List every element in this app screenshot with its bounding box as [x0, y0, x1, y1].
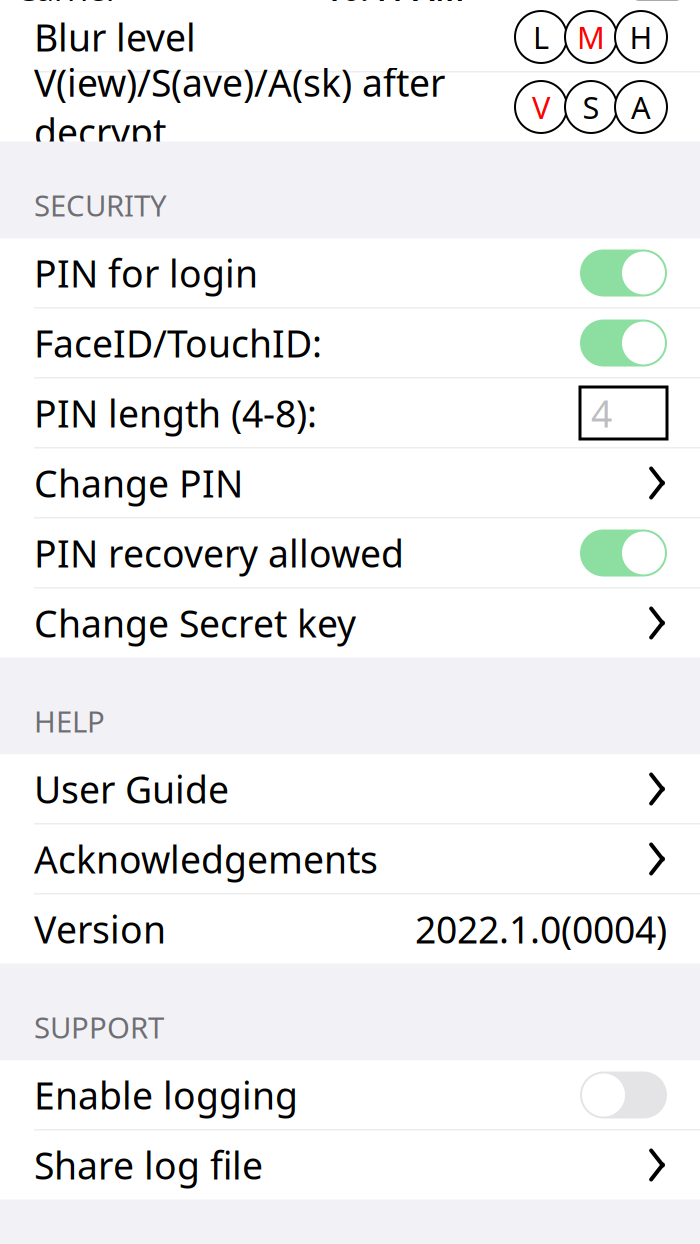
staticText: 10:41 AM	[324, 0, 465, 10]
staticText: Change PIN	[34, 458, 243, 508]
staticText: Change Secret key	[34, 598, 356, 648]
staticText: PIN for login	[34, 248, 258, 298]
staticText: Blur level	[34, 12, 196, 62]
staticText: Acknowledgements	[34, 834, 378, 884]
staticText: V(iew)/S(ave)/A(sk) after decrypt	[34, 57, 445, 157]
button[interactable]: Share log file	[0, 1130, 700, 1199]
button[interactable]: PIN for login	[0, 238, 700, 307]
staticText: L	[533, 17, 549, 57]
staticText: Share log file	[34, 1140, 263, 1190]
staticText: 4	[591, 388, 612, 438]
button[interactable]: H	[615, 11, 667, 63]
staticText: A	[631, 87, 651, 127]
staticText: M	[577, 17, 605, 57]
button[interactable]: Enable logging	[0, 1060, 700, 1129]
staticText: FaceID/TouchID:	[34, 318, 322, 368]
button[interactable]: L	[515, 11, 567, 63]
button[interactable]: PIN recovery allowed	[0, 518, 700, 587]
staticText: V	[532, 87, 550, 127]
staticText: Version	[34, 904, 166, 954]
staticText: SECURITY	[34, 185, 167, 224]
button[interactable]: A	[615, 81, 667, 133]
staticText: User Guide	[34, 764, 229, 814]
button[interactable]: V	[515, 81, 567, 133]
staticText: PIN length (4-8):	[34, 388, 317, 438]
button[interactable]: M	[565, 11, 617, 63]
staticText: H	[629, 17, 652, 57]
button[interactable]: S	[565, 81, 617, 133]
staticText: SUPPORT	[34, 1007, 164, 1046]
button[interactable]: FaceID/TouchID:	[0, 308, 700, 377]
button[interactable]: User Guide	[0, 754, 700, 823]
button[interactable]: Acknowledgements	[0, 824, 700, 893]
staticText: Enable logging	[34, 1070, 298, 1120]
staticText: PIN recovery allowed	[34, 528, 404, 578]
staticText: Carrier	[16, 0, 119, 10]
button[interactable]: PIN length	[580, 387, 667, 439]
staticText: S	[582, 87, 599, 127]
staticText: HELP	[34, 701, 105, 740]
staticText: 2022.1.0(0004)	[415, 904, 667, 954]
button[interactable]: Change Secret key	[0, 588, 700, 657]
button[interactable]: Change PIN	[0, 448, 700, 517]
